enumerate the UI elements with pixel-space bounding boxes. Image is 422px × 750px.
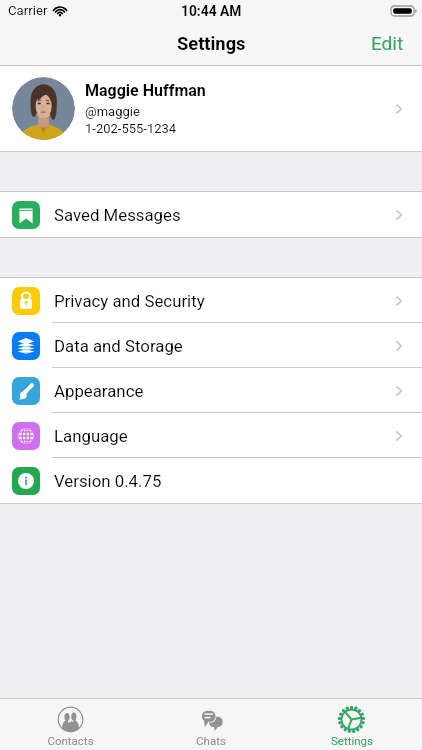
staticText: 10:44 AM	[181, 3, 242, 19]
staticText: Saved Messages	[54, 205, 395, 225]
staticText: Version 0.4.75	[54, 471, 403, 491]
staticText: Carrier	[8, 3, 48, 18]
staticText: @maggie	[85, 104, 140, 119]
staticText: Data and Storage	[54, 336, 395, 356]
staticText: Settings	[177, 33, 246, 54]
button[interactable]: Privacy and Security	[0, 278, 422, 323]
button[interactable]: Language	[0, 413, 422, 458]
staticText: Privacy and Security	[54, 291, 395, 311]
staticText: Settings	[331, 734, 373, 747]
button[interactable]: Data and Storage	[0, 323, 422, 368]
button[interactable]: Maggie Huffman	[0, 66, 422, 151]
staticText: Chats	[196, 734, 226, 747]
button[interactable]: Edit	[357, 25, 422, 61]
staticText: 1-202-555-1234	[85, 121, 177, 136]
button[interactable]: Appearance	[0, 368, 422, 413]
staticText: Appearance	[54, 381, 395, 401]
button[interactable]: Saved Messages	[0, 192, 422, 237]
staticText: Contacts	[47, 734, 94, 747]
button[interactable]: Settings	[281, 699, 422, 750]
staticText: Edit	[371, 32, 404, 54]
button[interactable]: Version 0.4.75	[0, 458, 422, 503]
button[interactable]: Contacts	[0, 699, 140, 750]
button[interactable]: Chats	[140, 699, 281, 750]
staticText: Maggie Huffman	[85, 81, 206, 100]
staticText: Language	[54, 426, 395, 446]
